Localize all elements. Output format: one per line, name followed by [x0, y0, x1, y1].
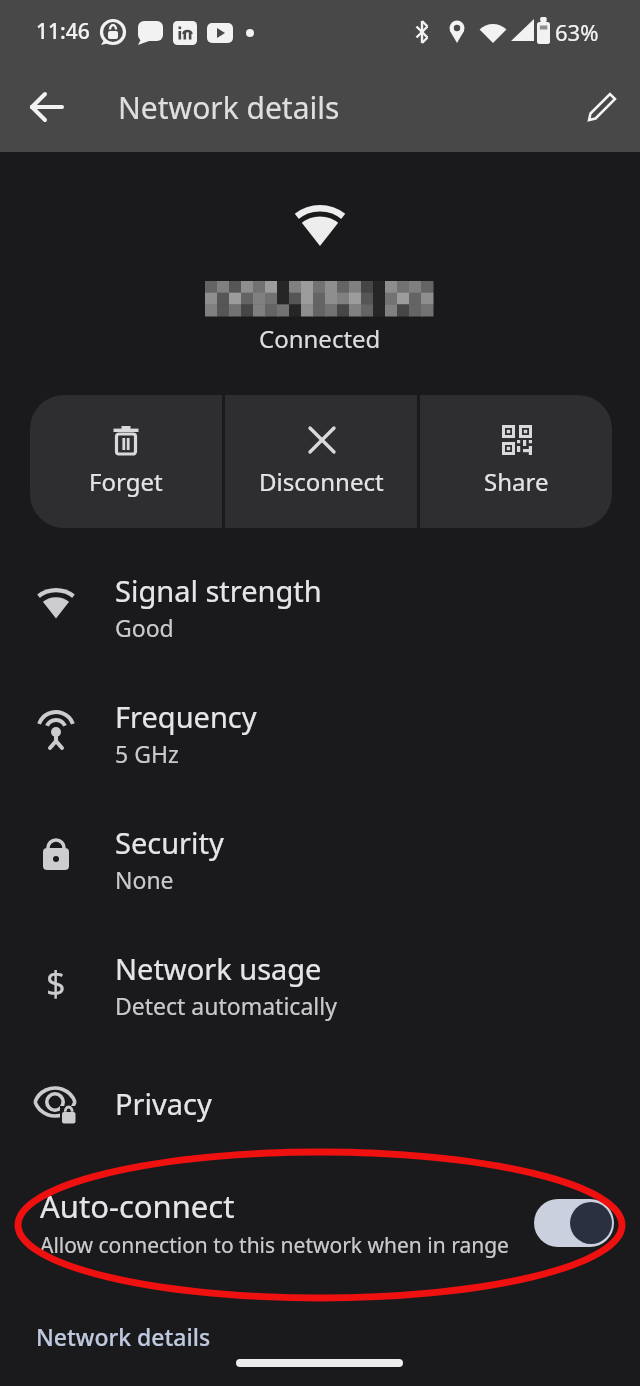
button[interactable]: Security	[0, 804, 640, 930]
staticText: Auto-connect	[40, 1185, 235, 1227]
staticText: Good	[115, 612, 174, 643]
staticText: 11:46	[36, 17, 90, 46]
staticText: Disconnect	[259, 465, 384, 498]
staticText: Privacy	[115, 1084, 212, 1123]
staticText: Network usage	[115, 949, 322, 988]
button[interactable]: Privacy	[0, 1056, 640, 1150]
button[interactable]	[534, 1199, 614, 1247]
button[interactable]: $	[0, 930, 640, 1056]
button[interactable]: Forget	[30, 395, 222, 528]
staticText: Security	[115, 823, 224, 862]
staticText: $	[46, 960, 66, 1004]
button[interactable]: Disconnect	[225, 395, 417, 528]
staticText: 5 GHz	[115, 738, 179, 769]
button[interactable]: Auto-connect	[0, 1168, 640, 1278]
staticText: Detect automatically	[115, 990, 337, 1021]
button[interactable]: Share	[420, 395, 612, 528]
staticText: None	[115, 864, 174, 895]
staticText: 63%	[555, 17, 599, 47]
button[interactable]	[575, 80, 629, 134]
staticText: Connected	[259, 322, 381, 355]
staticText: Share	[484, 465, 549, 498]
button[interactable]	[20, 80, 74, 134]
staticText: Network details	[36, 1321, 211, 1352]
button[interactable]: Frequency	[0, 678, 640, 804]
button[interactable]: Signal strength	[0, 552, 640, 678]
staticText: Network details	[118, 87, 340, 128]
staticText: Allow connection to this network when in…	[40, 1231, 509, 1260]
staticText: Signal strength	[115, 571, 322, 610]
staticText: Forget	[89, 465, 163, 498]
staticText: Frequency	[115, 697, 257, 736]
